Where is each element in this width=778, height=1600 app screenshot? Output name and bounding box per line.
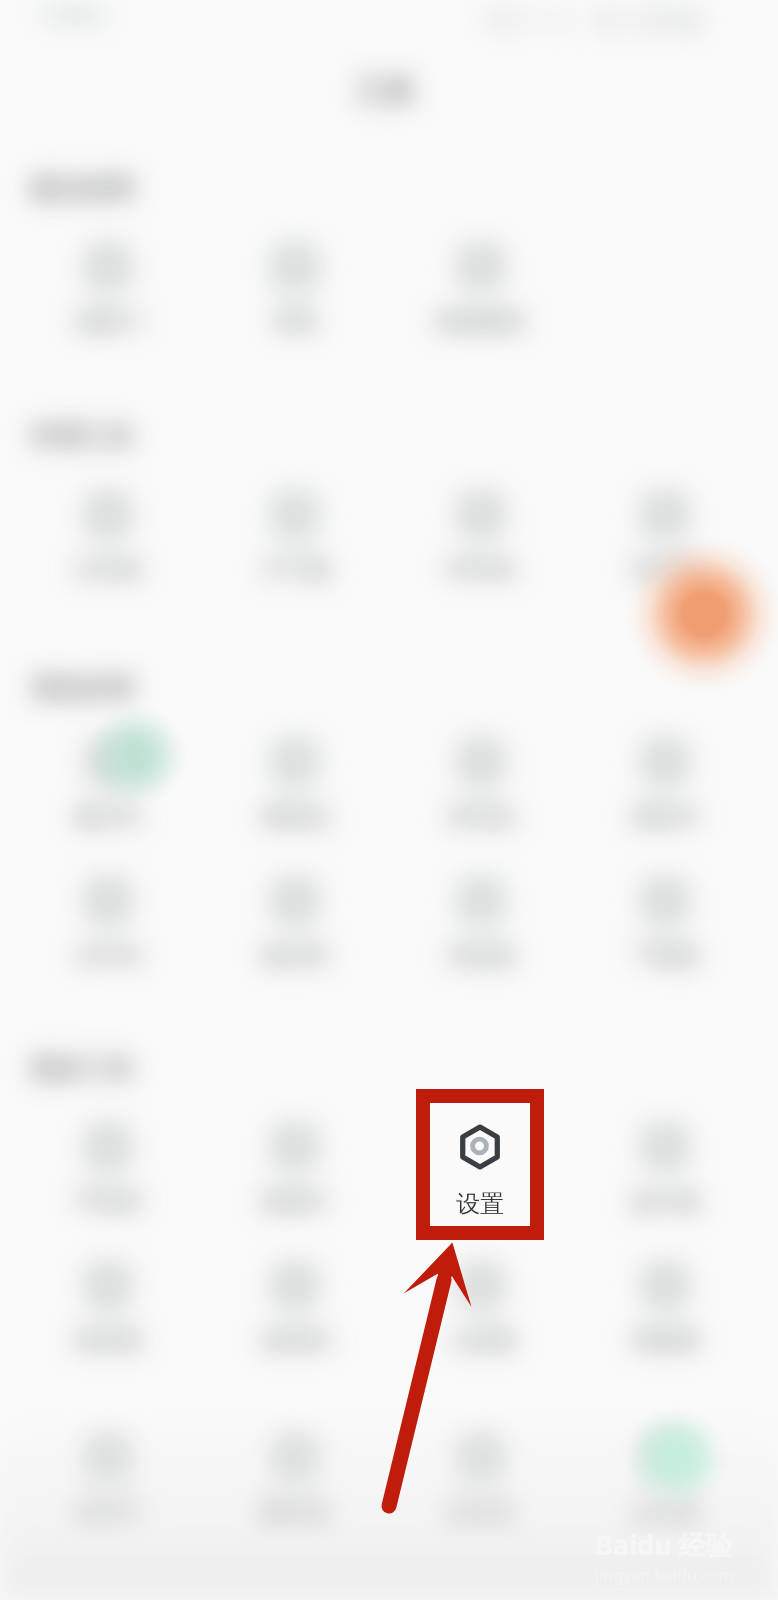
staticText: 手电筒 bbox=[74, 1187, 143, 1216]
staticText: 常用工具 bbox=[30, 420, 134, 453]
button[interactable]: 时钟表 bbox=[389, 493, 573, 584]
staticText: 最近使用 bbox=[30, 172, 134, 205]
staticText: 流量卡 bbox=[74, 307, 143, 336]
button[interactable]: 翻译器 bbox=[203, 1435, 387, 1526]
other: Pointer bbox=[0, 0, 778, 1600]
staticText: 设置 bbox=[458, 1187, 504, 1216]
button[interactable]: 天气预 bbox=[203, 493, 387, 584]
button[interactable]: 投屏器 bbox=[16, 1264, 200, 1355]
staticText: 放大镜 bbox=[631, 1187, 700, 1216]
staticText: 天气预 bbox=[261, 555, 330, 584]
button[interactable]: Shortcut bbox=[624, 534, 778, 694]
button[interactable]: 运动康 bbox=[573, 1435, 757, 1526]
button[interactable]: 驾驶模 bbox=[573, 1264, 757, 1355]
button[interactable]: 儿童锁 bbox=[389, 1264, 573, 1355]
staticText: 驾驶模 bbox=[631, 1326, 700, 1355]
staticText: 文件夹 bbox=[74, 941, 143, 970]
staticText: 儿童锁 bbox=[447, 1326, 516, 1355]
staticText: 设置 bbox=[456, 1189, 504, 1219]
staticText: 运动康 bbox=[631, 1497, 700, 1526]
staticText: 微信号 bbox=[74, 802, 143, 831]
button[interactable]: 下载器 bbox=[573, 879, 757, 970]
staticText: 备份录 bbox=[261, 941, 330, 970]
staticText: 工具 bbox=[355, 72, 415, 110]
staticText: 下载器 bbox=[631, 941, 700, 970]
staticText: 投屏器 bbox=[74, 1326, 143, 1355]
button[interactable]: 语音手 bbox=[16, 1435, 200, 1526]
staticText: 更多工具 bbox=[30, 1052, 134, 1085]
button[interactable]: 录音机 bbox=[389, 740, 573, 831]
staticText: 便签本 bbox=[631, 802, 700, 831]
staticText: 浏览器 bbox=[447, 941, 516, 970]
staticText: 时钟表 bbox=[447, 555, 516, 584]
staticText: 录音机 bbox=[447, 802, 516, 831]
button[interactable]: 指南针 bbox=[203, 1125, 387, 1216]
staticText: 指南针 bbox=[261, 1187, 330, 1216]
button[interactable]: 手电筒 bbox=[16, 1125, 200, 1216]
staticText: 应用市 bbox=[631, 555, 700, 584]
button[interactable]: 设置 bbox=[430, 1103, 530, 1226]
button[interactable]: 游戏间 bbox=[203, 1264, 387, 1355]
staticText: 日历表 bbox=[74, 555, 143, 584]
button[interactable]: 智能服务 bbox=[389, 245, 573, 336]
staticText: 系统应用 bbox=[30, 672, 134, 705]
staticText: 管家 bbox=[272, 307, 318, 336]
button[interactable]: 微信号 bbox=[16, 740, 200, 831]
button[interactable]: 流量卡 bbox=[16, 245, 200, 336]
button[interactable]: 文件夹 bbox=[16, 879, 200, 970]
button[interactable]: 应用市 bbox=[573, 493, 757, 584]
button[interactable]: 管家 bbox=[203, 245, 387, 336]
button[interactable]: 设置 bbox=[389, 1125, 573, 1216]
button[interactable]: 浏览器 bbox=[389, 879, 573, 970]
button[interactable]: 放大镜 bbox=[573, 1125, 757, 1216]
staticText: 智能服务 bbox=[435, 307, 527, 336]
button[interactable]: 便签本 bbox=[573, 740, 757, 831]
button[interactable]: 相机机 bbox=[203, 740, 387, 831]
staticText: Baidu 经验 bbox=[595, 1526, 733, 1563]
button[interactable]: 日历表 bbox=[16, 493, 200, 584]
staticText: 游戏间 bbox=[261, 1326, 330, 1355]
staticText: 相机机 bbox=[261, 802, 330, 831]
button[interactable]: 收音机 bbox=[389, 1435, 573, 1526]
button[interactable]: 备份录 bbox=[203, 879, 387, 970]
